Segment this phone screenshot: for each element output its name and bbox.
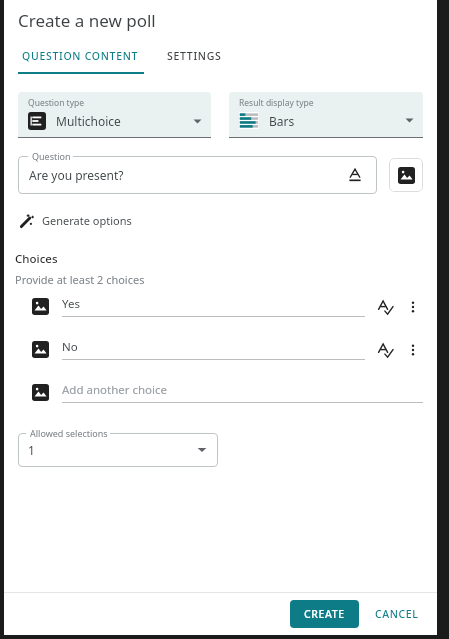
button[interactable]: Text format: [344, 164, 366, 186]
button[interactable]: More options: [403, 297, 423, 317]
staticText: Question: [32, 150, 71, 162]
staticText: SETTINGS: [167, 49, 222, 63]
staticText: Add another choice: [62, 382, 168, 398]
staticText: Bars: [269, 113, 404, 129]
button[interactable]: QUESTION CONTENT: [18, 43, 143, 69]
staticText: Allowed selections: [30, 427, 108, 439]
button[interactable]: Result display type: [229, 92, 423, 138]
button[interactable]: No: [18, 339, 423, 360]
button[interactable]: CANCEL: [367, 600, 427, 628]
button[interactable]: Spellcheck: [375, 297, 395, 317]
staticText: 1: [28, 442, 196, 458]
staticText: No: [62, 339, 78, 355]
button[interactable]: Yes: [18, 296, 423, 317]
button[interactable]: Spellcheck: [375, 340, 395, 360]
staticText: QUESTION CONTENT: [22, 49, 139, 63]
button[interactable]: Allowed selections: [18, 433, 218, 467]
staticText: Question type: [28, 97, 85, 109]
button[interactable]: CREATE: [290, 600, 359, 628]
staticText: Yes: [62, 296, 80, 312]
staticText: Generate options: [42, 213, 132, 228]
button[interactable]: Question type: [18, 92, 211, 138]
staticText: Provide at least 2 choices: [15, 272, 145, 287]
staticText: Multichoice: [56, 113, 192, 129]
staticText: Choices: [15, 251, 58, 267]
staticText: CREATE: [304, 607, 345, 621]
button[interactable]: Add another choice: [18, 382, 423, 403]
staticText: Create a new poll: [18, 9, 156, 32]
button[interactable]: SETTINGS: [163, 43, 226, 69]
staticText: Result display type: [239, 97, 314, 109]
button[interactable]: Add image: [389, 158, 423, 192]
staticText: CANCEL: [375, 607, 419, 621]
button[interactable]: More options: [403, 340, 423, 360]
button[interactable]: Generate options: [18, 209, 134, 232]
staticText: Are you present?: [29, 167, 344, 183]
